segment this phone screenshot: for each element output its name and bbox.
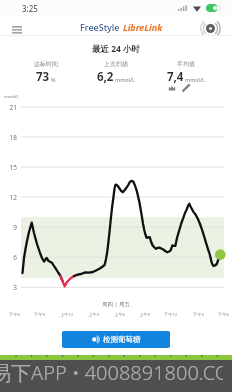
staticText: %	[51, 76, 56, 83]
staticText: LibreLink	[123, 21, 163, 33]
staticText: 周四 | 周五	[0, 300, 232, 308]
staticText: 21	[0, 103, 17, 112]
staticText: 7,4	[167, 69, 184, 85]
staticText: 6	[0, 253, 17, 262]
staticText: 9	[0, 223, 17, 232]
staticText: 最近 24 小时	[0, 43, 232, 55]
staticText: 下午9	[34, 312, 45, 318]
staticText: 上午9	[139, 312, 150, 318]
staticText: 达标时间	[34, 60, 58, 68]
staticText: 上午6	[114, 312, 125, 318]
staticText: mmol/L	[185, 76, 205, 83]
staticText: mmol/L	[4, 94, 19, 99]
button[interactable]: Carbohydrate note	[166, 82, 178, 94]
staticText: 73	[36, 69, 50, 85]
button[interactable]: Menu	[8, 21, 25, 38]
staticText: 下午6	[218, 312, 229, 318]
staticText: 易下APP • 4008891800.COM	[0, 359, 223, 386]
staticText: FreeStyle	[80, 21, 120, 33]
staticText: 18	[0, 133, 17, 142]
staticText: 15	[0, 163, 17, 172]
staticText: 6,2	[97, 69, 114, 85]
staticText: 3	[0, 283, 17, 292]
staticText: 上次扫描	[104, 60, 128, 68]
staticText: 3:25	[22, 3, 38, 14]
staticText: 12	[0, 193, 17, 202]
staticText: 下午12	[164, 312, 178, 318]
button[interactable]: Insulin note	[180, 82, 192, 94]
staticText: 平均值	[177, 60, 195, 68]
staticText: 检测葡萄糖	[103, 335, 141, 344]
button[interactable]: 检测葡萄糖	[62, 331, 170, 348]
staticText: 下午3	[193, 312, 204, 318]
staticText: mmol/L	[115, 76, 135, 83]
staticText: 上午3	[88, 312, 99, 318]
button[interactable]: Scan sensor	[200, 18, 221, 39]
staticText: 下午6	[9, 312, 20, 318]
staticText: 上午12	[60, 312, 74, 318]
